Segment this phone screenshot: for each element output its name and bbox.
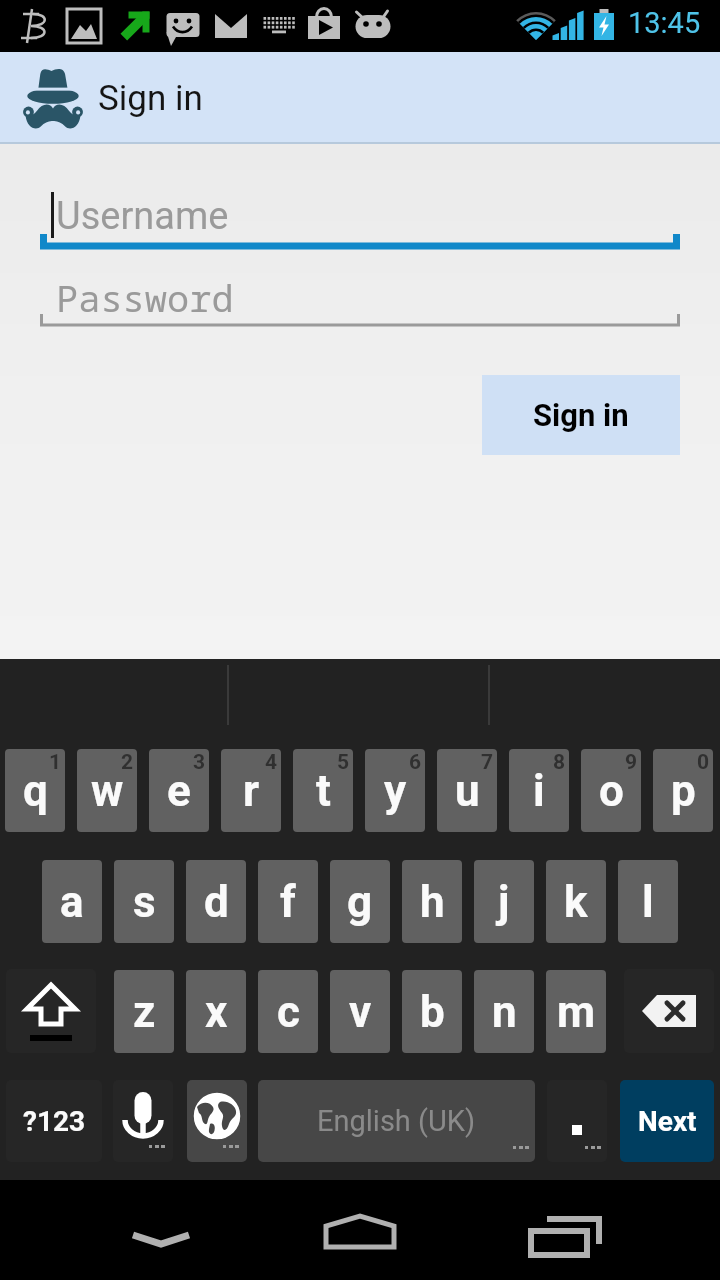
staticText: e bbox=[167, 765, 191, 817]
staticText: w bbox=[91, 765, 124, 817]
staticText: i bbox=[533, 765, 545, 817]
button[interactable]: Hide keyboard bbox=[101, 1180, 221, 1280]
staticText: a bbox=[60, 876, 84, 928]
button[interactable]: Home bbox=[300, 1180, 420, 1280]
button[interactable]: g bbox=[330, 860, 390, 943]
button[interactable]: u bbox=[437, 749, 497, 832]
staticText: 13:45 bbox=[628, 6, 701, 40]
button[interactable]: k bbox=[546, 860, 606, 943]
staticText: Username bbox=[56, 194, 229, 239]
staticText: n bbox=[492, 986, 517, 1038]
button[interactable]: y bbox=[365, 749, 425, 832]
button[interactable]: w bbox=[77, 749, 137, 832]
staticText: m bbox=[557, 986, 596, 1038]
staticText: 3 bbox=[193, 750, 206, 775]
staticText: 1 bbox=[49, 750, 62, 775]
button[interactable]: t bbox=[293, 749, 353, 832]
button[interactable]: Voice input bbox=[113, 1080, 173, 1162]
staticText: 5 bbox=[337, 750, 350, 775]
staticText: y bbox=[384, 765, 407, 817]
button[interactable]: m bbox=[546, 970, 606, 1053]
button[interactable]: i bbox=[509, 749, 569, 832]
staticText: c bbox=[277, 986, 300, 1038]
staticText: x bbox=[205, 986, 228, 1038]
staticText: l bbox=[642, 876, 654, 928]
button[interactable]: r bbox=[221, 749, 281, 832]
staticText: 4 bbox=[265, 750, 278, 775]
staticText: p bbox=[671, 765, 696, 817]
button[interactable]: j bbox=[474, 860, 534, 943]
staticText: g bbox=[347, 876, 373, 928]
button[interactable]: s bbox=[114, 860, 174, 943]
button[interactable]: Backspace bbox=[624, 969, 714, 1053]
staticText: ?123 bbox=[23, 1105, 86, 1138]
staticText: 0 bbox=[697, 750, 710, 775]
staticText: Sign in bbox=[533, 397, 629, 433]
staticText: q bbox=[23, 765, 48, 817]
button[interactable]: x bbox=[186, 970, 246, 1053]
button[interactable]: Sign in bbox=[482, 375, 680, 455]
button[interactable]: d bbox=[186, 860, 246, 943]
staticText: b bbox=[420, 986, 445, 1038]
button[interactable]: h bbox=[402, 860, 462, 943]
button[interactable]: n bbox=[474, 970, 534, 1053]
staticText: 2 bbox=[121, 750, 134, 775]
staticText: o bbox=[599, 765, 624, 817]
staticText: h bbox=[420, 876, 445, 928]
staticText: 7 bbox=[481, 750, 494, 775]
button[interactable] bbox=[547, 1080, 607, 1162]
staticText: Next bbox=[638, 1105, 697, 1138]
button[interactable]: Password bbox=[40, 267, 680, 327]
button[interactable]: ?123 bbox=[6, 1080, 102, 1162]
staticText: j bbox=[498, 876, 510, 928]
button[interactable]: Next bbox=[620, 1080, 714, 1162]
staticText: Password bbox=[56, 272, 234, 322]
button[interactable]: English (UK) bbox=[258, 1080, 535, 1162]
staticText: 8 bbox=[553, 750, 566, 775]
staticText: 6 bbox=[409, 750, 422, 775]
staticText: k bbox=[564, 876, 588, 928]
button[interactable]: Username bbox=[40, 188, 680, 250]
staticText: s bbox=[133, 876, 156, 928]
staticText: English (UK) bbox=[317, 1104, 476, 1138]
button[interactable]: Change language bbox=[187, 1080, 247, 1162]
button[interactable]: q bbox=[5, 749, 65, 832]
staticText: d bbox=[204, 876, 229, 928]
button[interactable]: b bbox=[402, 970, 462, 1053]
staticText: t bbox=[316, 765, 331, 817]
staticText: v bbox=[349, 986, 372, 1038]
button[interactable]: a bbox=[42, 860, 102, 943]
button[interactable]: f bbox=[258, 860, 318, 943]
button[interactable]: l bbox=[618, 860, 678, 943]
button[interactable]: z bbox=[114, 970, 174, 1053]
staticText: 9 bbox=[625, 750, 638, 775]
button[interactable]: e bbox=[149, 749, 209, 832]
button[interactable]: p bbox=[653, 749, 713, 832]
button[interactable]: Recent apps bbox=[503, 1180, 623, 1280]
button[interactable]: v bbox=[330, 970, 390, 1053]
button[interactable]: Shift bbox=[6, 969, 96, 1053]
staticText: u bbox=[455, 765, 480, 817]
staticText: r bbox=[243, 765, 260, 817]
staticText: f bbox=[280, 876, 296, 928]
staticText: z bbox=[133, 986, 156, 1038]
staticText: Sign in bbox=[98, 78, 203, 119]
button[interactable]: c bbox=[258, 970, 318, 1053]
button[interactable]: o bbox=[581, 749, 641, 832]
